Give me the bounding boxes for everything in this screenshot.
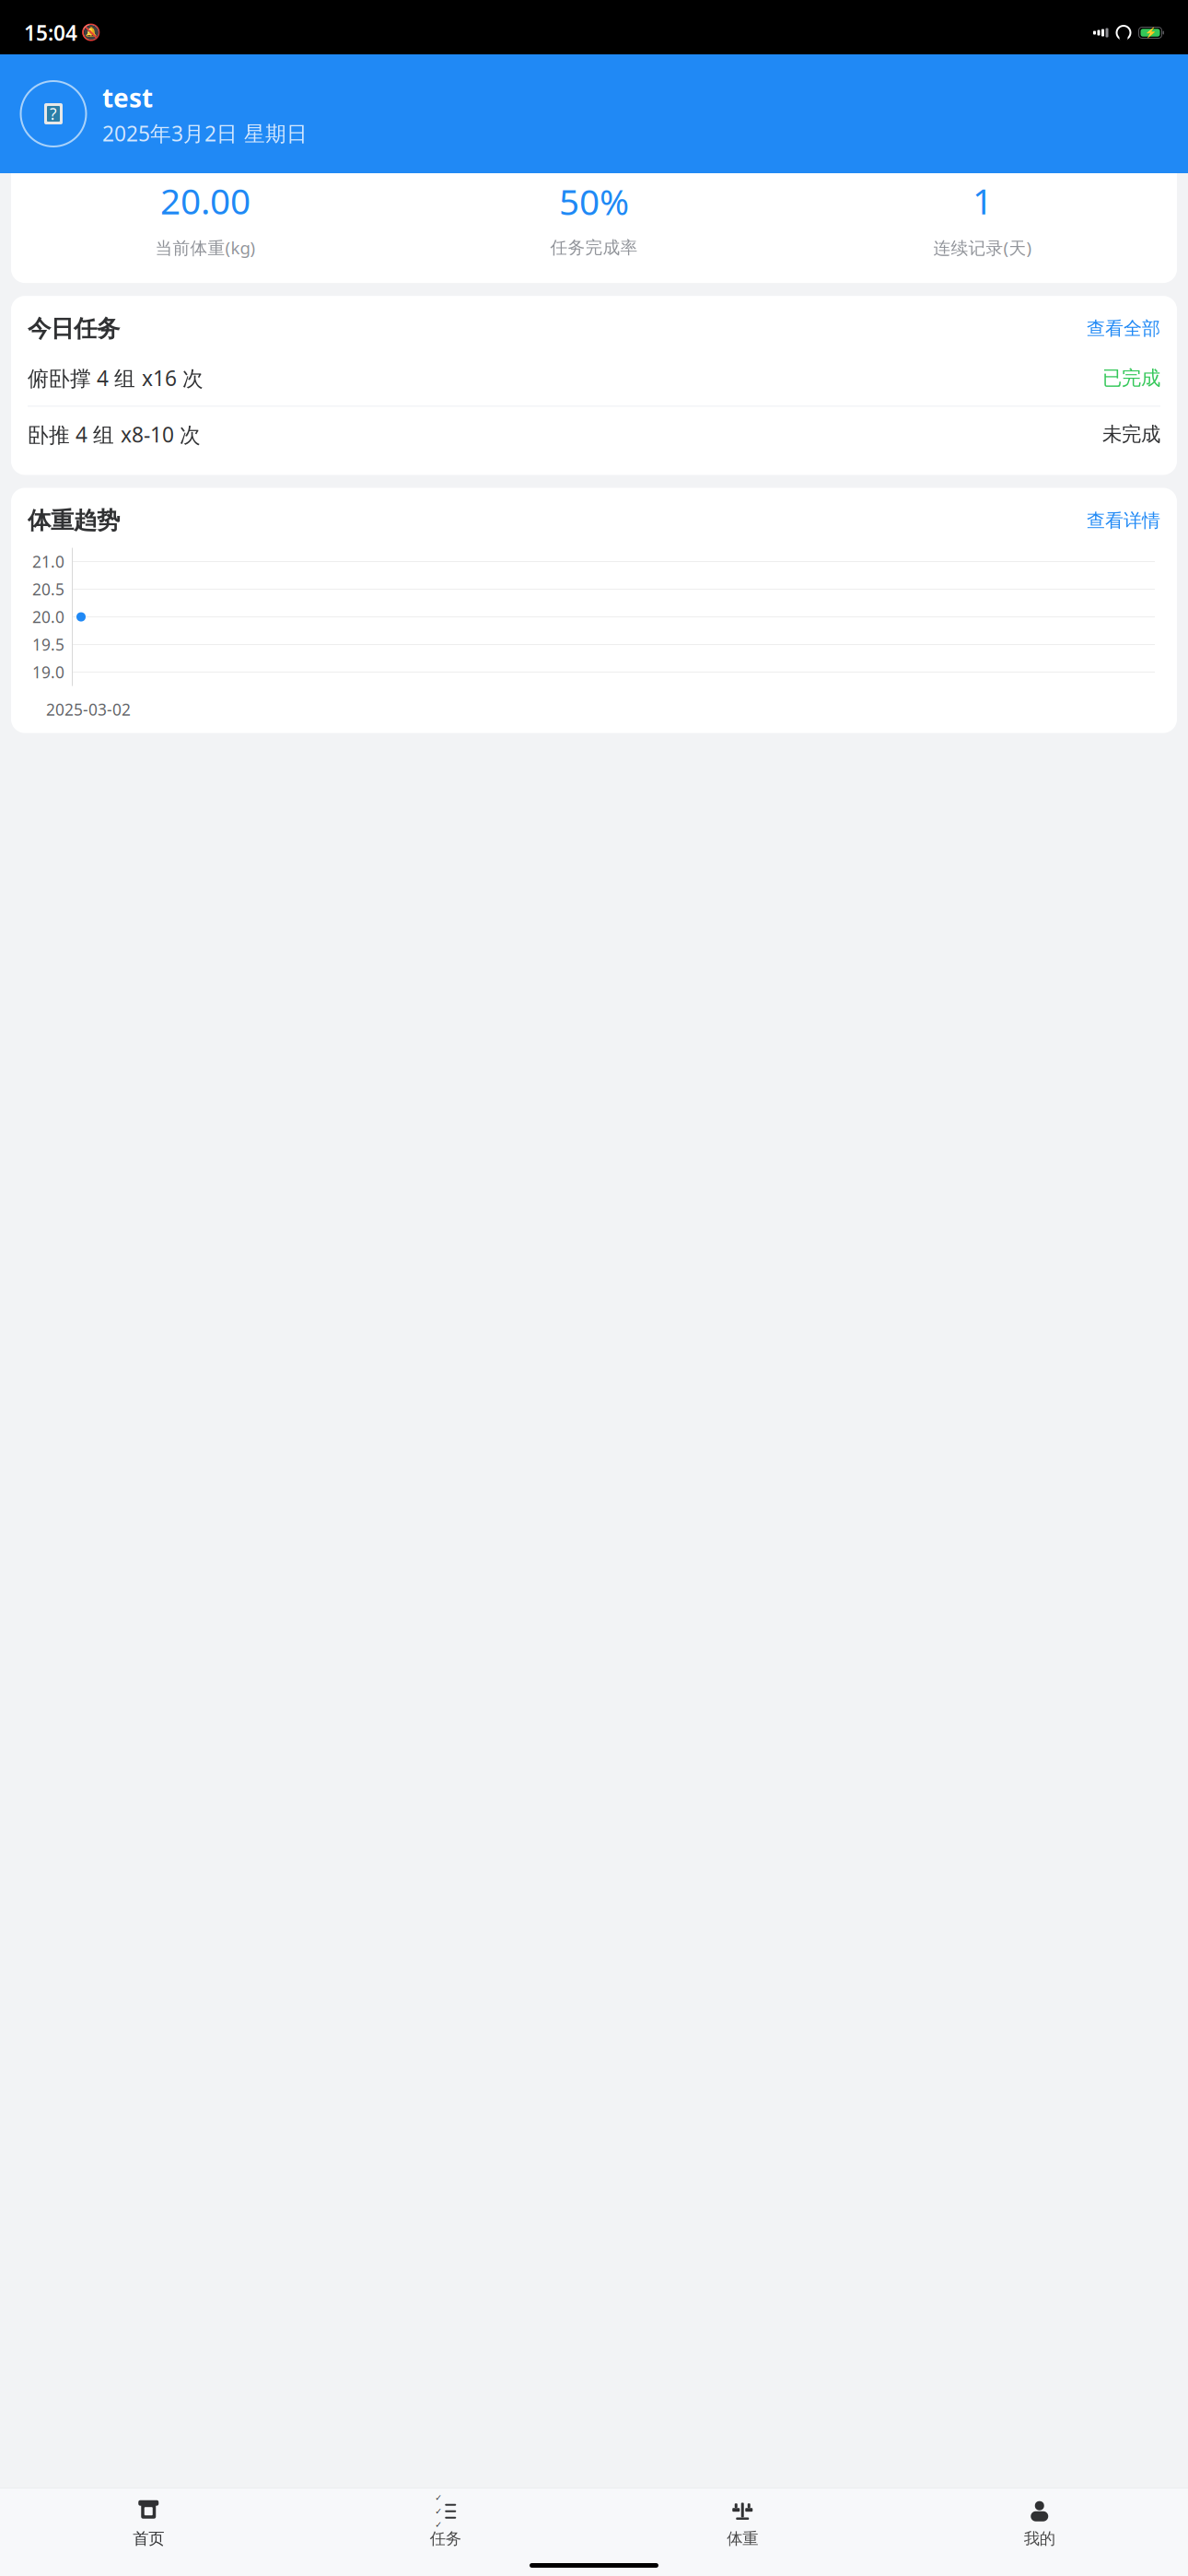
- staticText: ✓: [435, 2493, 442, 2503]
- button[interactable]: 俯卧撑 4 组 x16 次: [11, 350, 1177, 406]
- staticText: ✓: [435, 2520, 442, 2530]
- staticText: 体重: [727, 2529, 758, 2548]
- staticText: 2025-03-02: [46, 699, 131, 720]
- button[interactable]: Profile photo: [19, 80, 87, 148]
- staticText: 19.0: [32, 662, 64, 683]
- staticText: 1: [973, 177, 993, 224]
- staticText: 连续记录(天): [933, 236, 1032, 259]
- staticText: 俯卧撑 4 组 x16 次: [28, 364, 204, 392]
- staticText: 查看详情: [1087, 509, 1160, 532]
- staticText: 今日任务: [28, 314, 120, 343]
- staticText: test: [102, 81, 153, 115]
- button[interactable]: 体重: [594, 2496, 891, 2552]
- staticText: ⚡: [1144, 27, 1156, 38]
- staticText: 当前体重(kg): [155, 236, 256, 259]
- staticText: 已完成: [1102, 366, 1160, 390]
- staticText: 任务: [430, 2529, 461, 2548]
- staticText: 20.00: [160, 177, 250, 224]
- staticText: 首页: [133, 2529, 164, 2548]
- button[interactable]: 查看全部: [1087, 317, 1160, 340]
- staticText: 21.0: [32, 551, 64, 572]
- staticText: 2025年3月2日 星期日: [102, 119, 308, 147]
- staticText: 查看全部: [1087, 317, 1160, 340]
- staticText: 15:04: [24, 19, 77, 47]
- staticText: 未完成: [1102, 422, 1160, 446]
- staticText: 20.0: [32, 606, 64, 628]
- staticText: 🔕: [81, 24, 101, 42]
- button[interactable]: 我的: [891, 2496, 1188, 2552]
- staticText: ?: [50, 103, 57, 124]
- staticText: 我的: [1024, 2529, 1055, 2548]
- staticText: 体重趋势: [28, 506, 120, 535]
- staticText: 50%: [559, 178, 629, 225]
- button[interactable]: 首页: [0, 2496, 297, 2552]
- staticText: 任务完成率: [550, 237, 638, 258]
- staticText: 20.5: [32, 579, 64, 600]
- staticText: 19.5: [32, 634, 64, 655]
- button[interactable]: 查看详情: [1087, 509, 1160, 532]
- button[interactable]: ✓: [297, 2496, 594, 2552]
- button[interactable]: 卧推 4 组 x8-10 次: [11, 407, 1177, 462]
- staticText: ✓: [435, 2506, 442, 2516]
- staticText: 卧推 4 组 x8-10 次: [28, 420, 201, 448]
